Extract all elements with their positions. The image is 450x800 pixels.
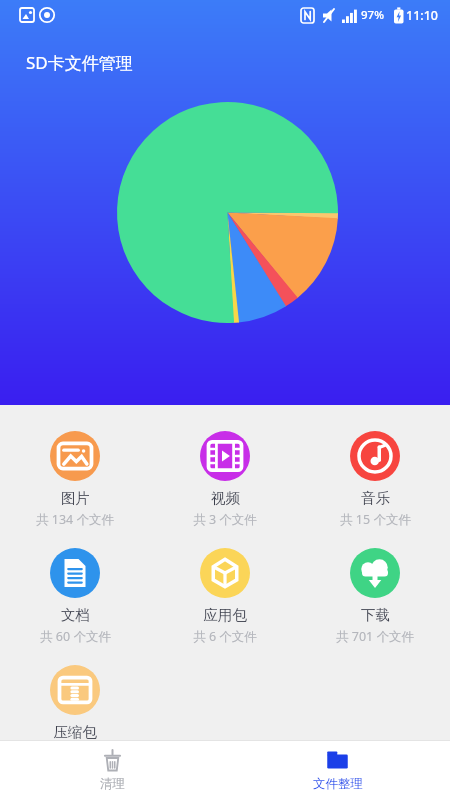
button[interactable]: 图片 — [0, 431, 150, 528]
staticText: 图片 — [61, 489, 90, 507]
staticText: 文件整理 — [313, 776, 363, 792]
staticText: SD卡文件管理 — [26, 51, 133, 74]
button[interactable]: 文件整理 — [225, 740, 450, 800]
button[interactable]: 清理 — [0, 740, 225, 800]
staticText: 共 6 个文件 — [193, 628, 257, 645]
staticText: 11:10 — [406, 7, 439, 24]
staticText: 应用包 — [203, 606, 247, 624]
button[interactable]: 下载 — [300, 548, 450, 645]
button[interactable]: 压缩包 — [0, 665, 150, 740]
staticText: 97% — [361, 7, 384, 23]
staticText: 音乐 — [361, 489, 390, 507]
button[interactable]: 文档 — [0, 548, 150, 645]
staticText: 视频 — [211, 489, 240, 507]
staticText: 压缩包 — [53, 723, 97, 740]
staticText: 共 60 个文件 — [40, 628, 111, 645]
staticText: 共 3 个文件 — [193, 511, 257, 528]
staticText: 下载 — [361, 606, 390, 624]
button[interactable]: 视频 — [150, 431, 300, 528]
staticText: 共 15 个文件 — [340, 511, 411, 528]
button[interactable]: 应用包 — [150, 548, 300, 645]
button[interactable]: 音乐 — [300, 431, 450, 528]
staticText: 清理 — [100, 776, 125, 792]
staticText: 共 134 个文件 — [36, 511, 114, 528]
staticText: 共 701 个文件 — [336, 628, 414, 645]
staticText: 文档 — [61, 606, 90, 624]
